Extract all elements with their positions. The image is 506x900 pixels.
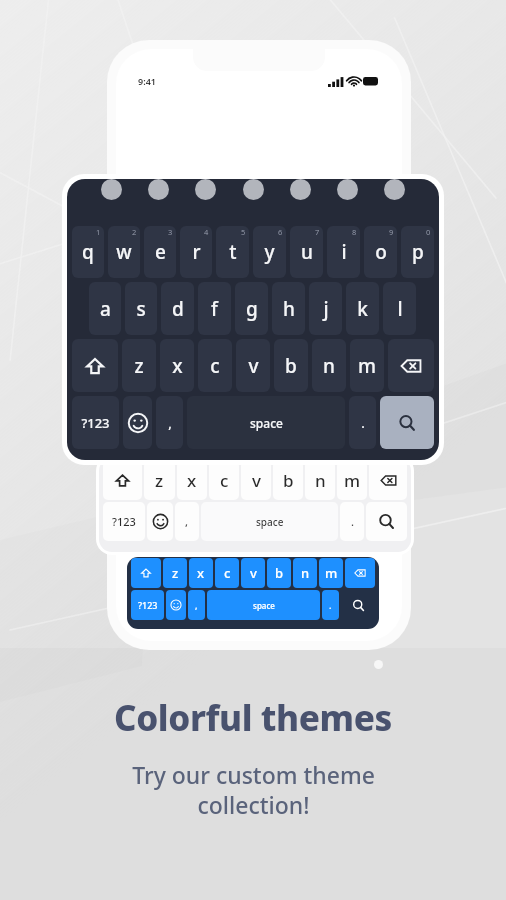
button[interactable]: u — [290, 226, 323, 278]
button[interactable]: space — [207, 590, 320, 620]
button[interactable]: s — [125, 282, 157, 335]
button[interactable]: Shift — [131, 558, 161, 588]
button[interactable]: space — [187, 396, 345, 449]
button[interactable]: space — [201, 502, 338, 541]
button[interactable] — [243, 179, 264, 200]
staticText: x — [197, 564, 205, 582]
button[interactable]: m — [337, 461, 367, 500]
staticText: q — [82, 239, 94, 265]
button[interactable]: x — [189, 558, 213, 588]
staticText: . — [329, 599, 332, 611]
button[interactable]: Shift — [72, 339, 118, 392]
button[interactable] — [195, 179, 216, 200]
staticText: m — [358, 353, 376, 379]
button[interactable]: , — [175, 502, 199, 541]
staticText: 8 — [352, 227, 357, 237]
button[interactable]: Emoji — [123, 396, 152, 449]
button[interactable]: Backspace — [345, 558, 375, 588]
staticText: 7 — [315, 227, 320, 237]
button[interactable]: q — [72, 226, 104, 278]
button[interactable]: h — [272, 282, 305, 335]
staticText: 6 — [278, 227, 283, 237]
button[interactable]: k — [346, 282, 379, 335]
button[interactable]: c — [215, 558, 239, 588]
button[interactable]: ?123 — [131, 590, 164, 620]
staticText: 1 — [96, 227, 101, 237]
staticText: a — [100, 296, 111, 322]
button[interactable]: , — [188, 590, 205, 620]
button[interactable]: m — [319, 558, 343, 588]
button[interactable]: x — [177, 461, 207, 500]
staticText: d — [172, 296, 184, 322]
button[interactable]: z — [163, 558, 187, 588]
button[interactable]: Search — [380, 396, 434, 449]
staticText: , — [195, 599, 198, 611]
button[interactable]: . — [349, 396, 376, 449]
button[interactable] — [337, 179, 358, 200]
button[interactable]: i — [327, 226, 360, 278]
button[interactable]: n — [312, 339, 346, 392]
staticText: b — [285, 353, 297, 379]
button[interactable]: Search — [341, 590, 375, 620]
button[interactable]: v — [241, 558, 265, 588]
staticText: l — [397, 296, 403, 322]
button[interactable] — [148, 179, 169, 200]
button[interactable] — [101, 179, 122, 200]
button[interactable]: Emoji — [147, 502, 173, 541]
staticText: . — [351, 514, 354, 529]
staticText: i — [341, 239, 347, 265]
button[interactable]: Search — [366, 502, 407, 541]
button[interactable] — [290, 179, 311, 200]
button[interactable]: Backspace — [369, 461, 407, 500]
button[interactable]: z — [144, 461, 175, 500]
button[interactable]: v — [241, 461, 271, 500]
staticText: , — [185, 514, 189, 529]
button[interactable]: m — [350, 339, 384, 392]
button[interactable]: b — [267, 558, 291, 588]
button[interactable]: . — [322, 590, 339, 620]
staticText: Colorful themes — [114, 694, 392, 742]
button[interactable]: w — [108, 226, 140, 278]
button[interactable]: d — [161, 282, 194, 335]
button[interactable]: ?123 — [72, 396, 119, 449]
button[interactable]: e — [144, 226, 176, 278]
button[interactable]: y — [253, 226, 286, 278]
staticText: x — [172, 353, 183, 379]
button[interactable]: c — [209, 461, 239, 500]
staticText: k — [357, 296, 368, 322]
button[interactable]: , — [156, 396, 183, 449]
staticText: h — [283, 296, 295, 322]
staticText: t — [229, 239, 237, 265]
staticText: z — [134, 353, 144, 379]
staticText: , — [168, 414, 172, 432]
staticText: space — [250, 415, 283, 431]
button[interactable]: Emoji — [166, 590, 186, 620]
staticText: u — [301, 239, 313, 265]
button[interactable]: r — [180, 226, 212, 278]
button[interactable]: t — [216, 226, 249, 278]
button[interactable]: z — [122, 339, 156, 392]
staticText: r — [192, 239, 201, 265]
button[interactable]: b — [273, 461, 303, 500]
button[interactable]: n — [293, 558, 317, 588]
button[interactable]: g — [235, 282, 268, 335]
button[interactable]: f — [198, 282, 231, 335]
button[interactable]: a — [89, 282, 121, 335]
button[interactable]: j — [309, 282, 342, 335]
staticText: ?123 — [81, 414, 110, 432]
button[interactable]: l — [383, 282, 416, 335]
staticText: z — [172, 564, 179, 582]
button[interactable]: c — [198, 339, 232, 392]
button[interactable]: Shift — [103, 461, 142, 500]
button[interactable]: o — [364, 226, 397, 278]
button[interactable]: x — [160, 339, 194, 392]
button[interactable]: v — [236, 339, 270, 392]
button[interactable]: p — [401, 226, 434, 278]
button[interactable]: . — [340, 502, 364, 541]
button[interactable]: Backspace — [388, 339, 434, 392]
button[interactable]: b — [274, 339, 308, 392]
button[interactable]: n — [305, 461, 335, 500]
button[interactable] — [384, 179, 405, 200]
staticText: space — [256, 515, 284, 529]
button[interactable]: ?123 — [103, 502, 145, 541]
